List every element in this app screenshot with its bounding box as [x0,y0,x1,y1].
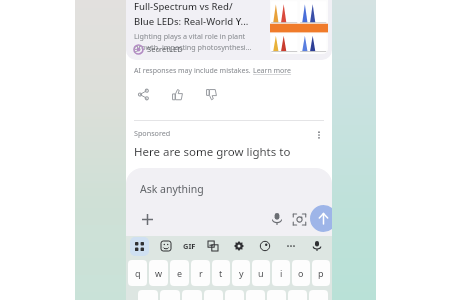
staticText: r [199,267,203,279]
staticText: w [155,267,163,279]
button[interactable]: f [204,290,223,300]
button[interactable]: y [232,260,250,286]
button[interactable]: i [272,260,290,286]
button[interactable]: Thumbs down [202,85,220,103]
button[interactable]: Share [134,85,152,103]
staticText: growth, impacting photosynthesi... [134,42,252,52]
button[interactable]: Send [310,205,332,232]
staticText: GIF [183,241,196,251]
button[interactable]: t [212,260,230,286]
button[interactable]: Voice [308,237,326,255]
button[interactable]: Full-Spectrum vs Red/ [126,0,332,60]
button[interactable]: Ad options [312,128,326,142]
button[interactable]: Translate [204,237,222,255]
staticText: q [135,267,141,279]
button[interactable]: k [288,290,307,300]
button[interactable]: w [149,260,168,286]
button[interactable]: Add [136,208,158,230]
button[interactable]: More [282,237,300,255]
button[interactable]: Theme [256,237,274,255]
staticText: Learn more [253,66,292,76]
button[interactable]: l [309,290,328,300]
button[interactable]: Thumbs up [168,85,186,103]
staticText: Ask anything [140,182,204,196]
button[interactable]: r [191,260,210,286]
button[interactable]: d [182,290,202,300]
button[interactable]: o [292,260,310,286]
staticText: Lighting plays a vital role in plant [134,31,246,41]
staticText: e [177,267,183,279]
button[interactable]: u [252,260,270,286]
button[interactable]: Google Lens [288,208,310,230]
staticText: Here are some grow lights to [134,144,291,160]
staticText: Blue LEDs: Real-World Y... [134,15,249,28]
staticText: SecretLED [147,44,183,54]
button[interactable]: h [246,290,265,300]
button[interactable]: s [160,290,180,300]
button[interactable]: Stickers [157,237,175,255]
button[interactable]: g [225,290,244,300]
button[interactable]: j [267,290,286,300]
button[interactable]: Voice input [266,208,288,230]
button[interactable]: Keyboard modes [130,237,149,256]
button[interactable]: Settings [230,237,248,255]
staticText: u [258,267,264,279]
staticText: i [280,267,283,279]
button[interactable]: p [312,260,330,286]
staticText: p [318,267,324,279]
button[interactable]: a [138,290,158,300]
staticText: t [219,267,223,279]
staticText: o [298,267,304,279]
button[interactable]: More options [312,42,326,56]
staticText: AI responses may include mistakes. [134,66,253,76]
staticText: y [239,267,244,279]
staticText: Full-Spectrum vs Red/ [134,0,233,13]
button[interactable]: q [128,260,147,286]
staticText: Sponsored [134,128,171,138]
button[interactable]: e [170,260,189,286]
